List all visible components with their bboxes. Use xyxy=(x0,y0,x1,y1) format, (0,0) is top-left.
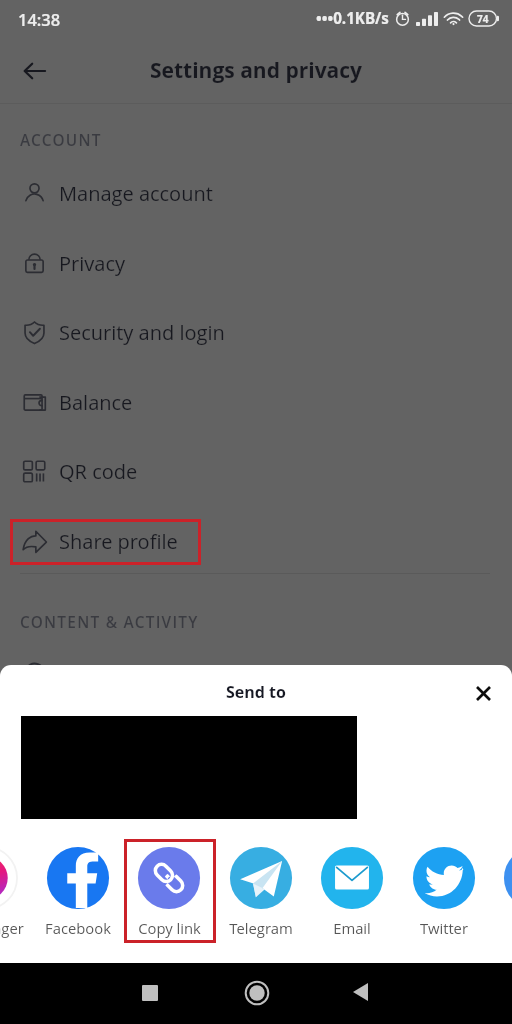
staticText: Email xyxy=(333,918,371,938)
staticText: Balance xyxy=(59,389,133,416)
staticText: Twitter xyxy=(420,918,468,938)
staticText: 14:38 xyxy=(18,8,61,30)
button[interactable]: Security and login xyxy=(0,308,512,356)
staticText: •••0.1KB/s xyxy=(316,8,389,29)
staticText: Messenger xyxy=(0,918,24,938)
staticText: CONTENT & ACTIVITY xyxy=(20,612,199,633)
button[interactable]: Home xyxy=(241,977,272,1008)
staticText: Send to xyxy=(226,681,286,703)
button[interactable]: More xyxy=(493,846,512,938)
button[interactable]: Share profile xyxy=(0,517,512,565)
staticText: Facebook xyxy=(45,918,111,938)
button[interactable]: Balance xyxy=(0,378,512,426)
button[interactable]: Messenger xyxy=(0,846,28,938)
button[interactable]: Recents xyxy=(135,978,165,1008)
button[interactable]: Back xyxy=(13,49,57,93)
button[interactable]: Copy link xyxy=(127,846,211,938)
button[interactable]: Manage account xyxy=(0,169,512,217)
button[interactable]: Telegram xyxy=(219,846,303,938)
staticText: Settings and privacy xyxy=(150,56,363,85)
staticText: 74 xyxy=(477,12,489,26)
button[interactable]: Back xyxy=(345,977,375,1007)
button[interactable]: Facebook xyxy=(36,846,120,938)
staticText: QR code xyxy=(59,458,138,485)
staticText: ACCOUNT xyxy=(20,130,102,151)
button[interactable]: Close xyxy=(463,673,503,713)
staticText: Telegram xyxy=(229,918,293,938)
button[interactable]: Privacy xyxy=(0,239,512,287)
staticText: Copy link xyxy=(138,918,201,938)
staticText: Manage account xyxy=(59,180,213,207)
button[interactable]: Email xyxy=(310,846,394,938)
button[interactable]: Twitter xyxy=(402,846,486,938)
staticText: Security and login xyxy=(59,319,225,346)
staticText: Share profile xyxy=(59,528,178,555)
staticText: Privacy xyxy=(59,250,126,277)
button[interactable]: QR code xyxy=(0,447,512,495)
